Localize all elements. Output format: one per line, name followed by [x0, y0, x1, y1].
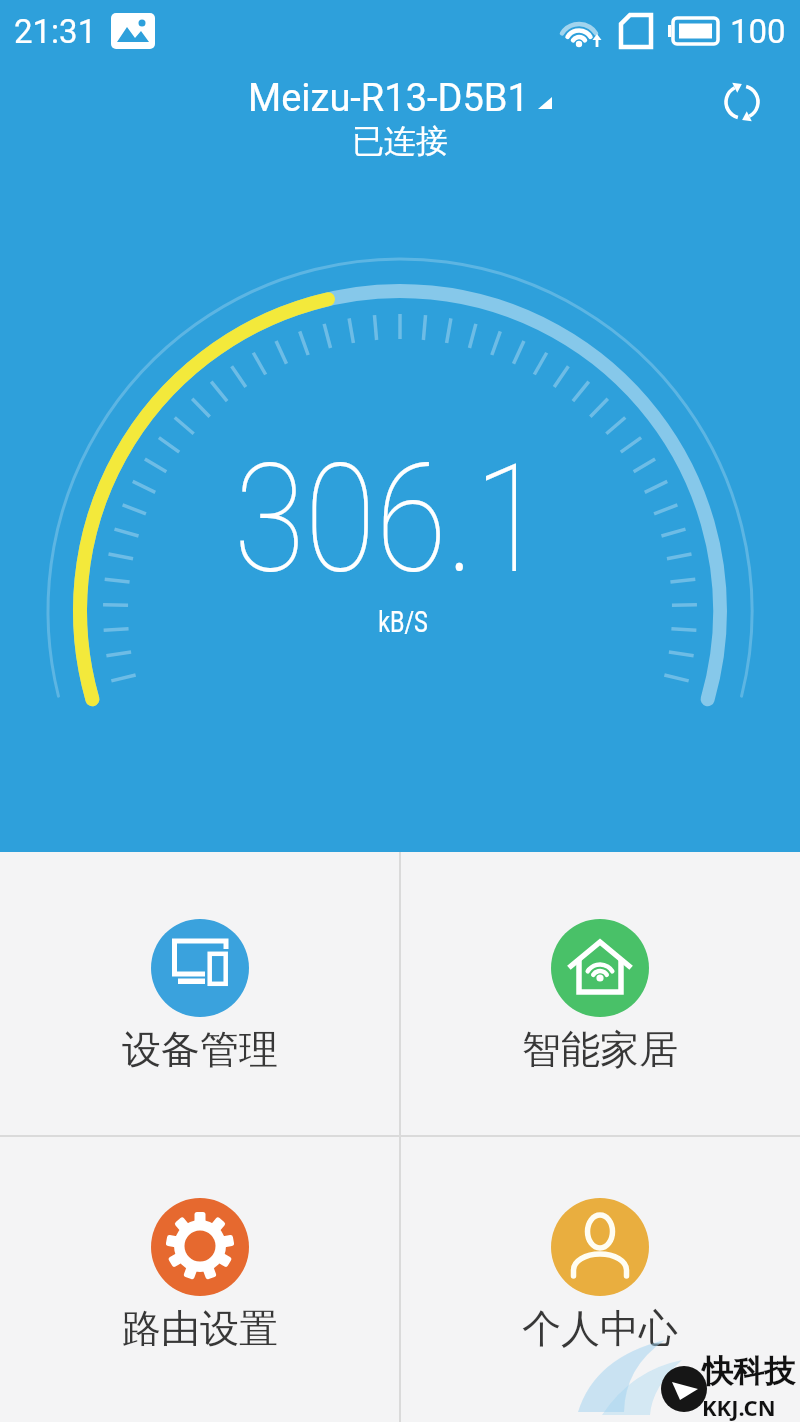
staticText: 306.1 — [234, 432, 545, 608]
button[interactable]: 智能家居 — [400, 852, 800, 1136]
staticText: 已连接 — [352, 121, 448, 161]
button[interactable] — [722, 82, 762, 122]
staticText: 21:31 — [14, 12, 97, 51]
staticText: 100 — [730, 12, 786, 51]
staticText: 智能家居 — [522, 1025, 678, 1074]
staticText: Meizu-R13-D5B1 — [248, 76, 529, 121]
staticText: 设备管理 — [122, 1025, 278, 1074]
staticText: 快科技 — [702, 1352, 795, 1391]
staticText: kB/S — [378, 605, 428, 639]
button[interactable]: 路由设置 — [0, 1136, 400, 1422]
staticText: 个人中心 — [522, 1304, 678, 1353]
staticText: KKJ.CN — [702, 1392, 776, 1422]
button[interactable]: Meizu-R13-D5B1 — [248, 76, 552, 121]
button[interactable]: 个人中心 — [400, 1136, 800, 1422]
button[interactable]: 设备管理 — [0, 852, 400, 1136]
staticText: 路由设置 — [122, 1304, 278, 1353]
